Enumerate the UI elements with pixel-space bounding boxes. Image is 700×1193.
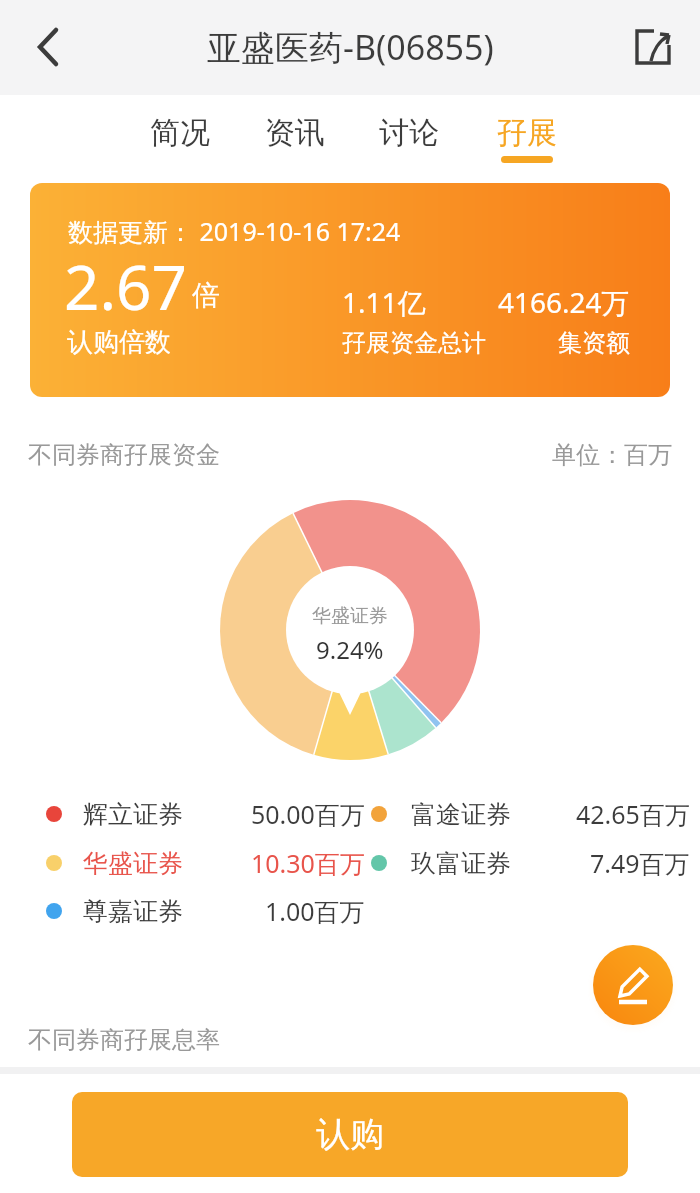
staticText: 华盛证券: [312, 604, 388, 628]
staticText: 1.00百万: [265, 894, 365, 928]
staticText: 亚盛医药-B(06855): [207, 24, 494, 70]
staticText: 7.49百万: [590, 846, 690, 880]
staticText: 单位：百万: [552, 440, 672, 470]
button[interactable]: 认购: [72, 1092, 628, 1177]
staticText: 认购倍数: [67, 326, 171, 359]
staticText: 50.00百万: [251, 797, 365, 831]
staticText: 尊嘉证券: [83, 896, 183, 927]
staticText: 倍: [192, 278, 220, 313]
staticText: 辉立证券: [83, 799, 183, 830]
button[interactable]: [593, 945, 673, 1025]
staticText: 9.24%: [316, 633, 384, 666]
staticText: 玖富证券: [411, 848, 511, 879]
button[interactable]: 资讯: [250, 105, 340, 160]
button[interactable]: 简况: [135, 105, 225, 160]
staticText: 讨论: [379, 114, 439, 152]
staticText: 孖展: [497, 114, 557, 152]
staticText: 1.11亿: [342, 283, 426, 321]
staticText: 孖展资金总计: [342, 328, 486, 358]
staticText: 4166.24万: [498, 283, 630, 321]
button[interactable]: 孖展: [482, 105, 572, 160]
button[interactable]: [627, 21, 679, 73]
staticText: 42.65百万: [576, 797, 690, 831]
staticText: 富途证券: [411, 799, 511, 830]
button[interactable]: [20, 20, 75, 75]
staticText: 集资额: [558, 328, 630, 358]
button[interactable]: 讨论: [364, 105, 454, 160]
staticText: 10.30百万: [251, 846, 365, 880]
staticText: 资讯: [265, 114, 325, 152]
staticText: 华盛证券: [83, 848, 183, 879]
staticText: 不同券商孖展资金: [28, 440, 220, 470]
staticText: 不同券商孖展息率: [28, 1025, 220, 1055]
staticText: 简况: [150, 114, 210, 152]
staticText: 认购: [316, 1113, 384, 1156]
staticText: 2.67: [64, 244, 188, 328]
staticText: 数据更新： 2019-10-16 17:24: [68, 214, 401, 248]
